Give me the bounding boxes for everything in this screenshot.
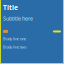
staticText: Title xyxy=(3,3,18,12)
staticText: Body line two xyxy=(3,44,26,49)
staticText: Body line one xyxy=(3,36,26,41)
staticText: Subtitle here xyxy=(3,15,33,22)
